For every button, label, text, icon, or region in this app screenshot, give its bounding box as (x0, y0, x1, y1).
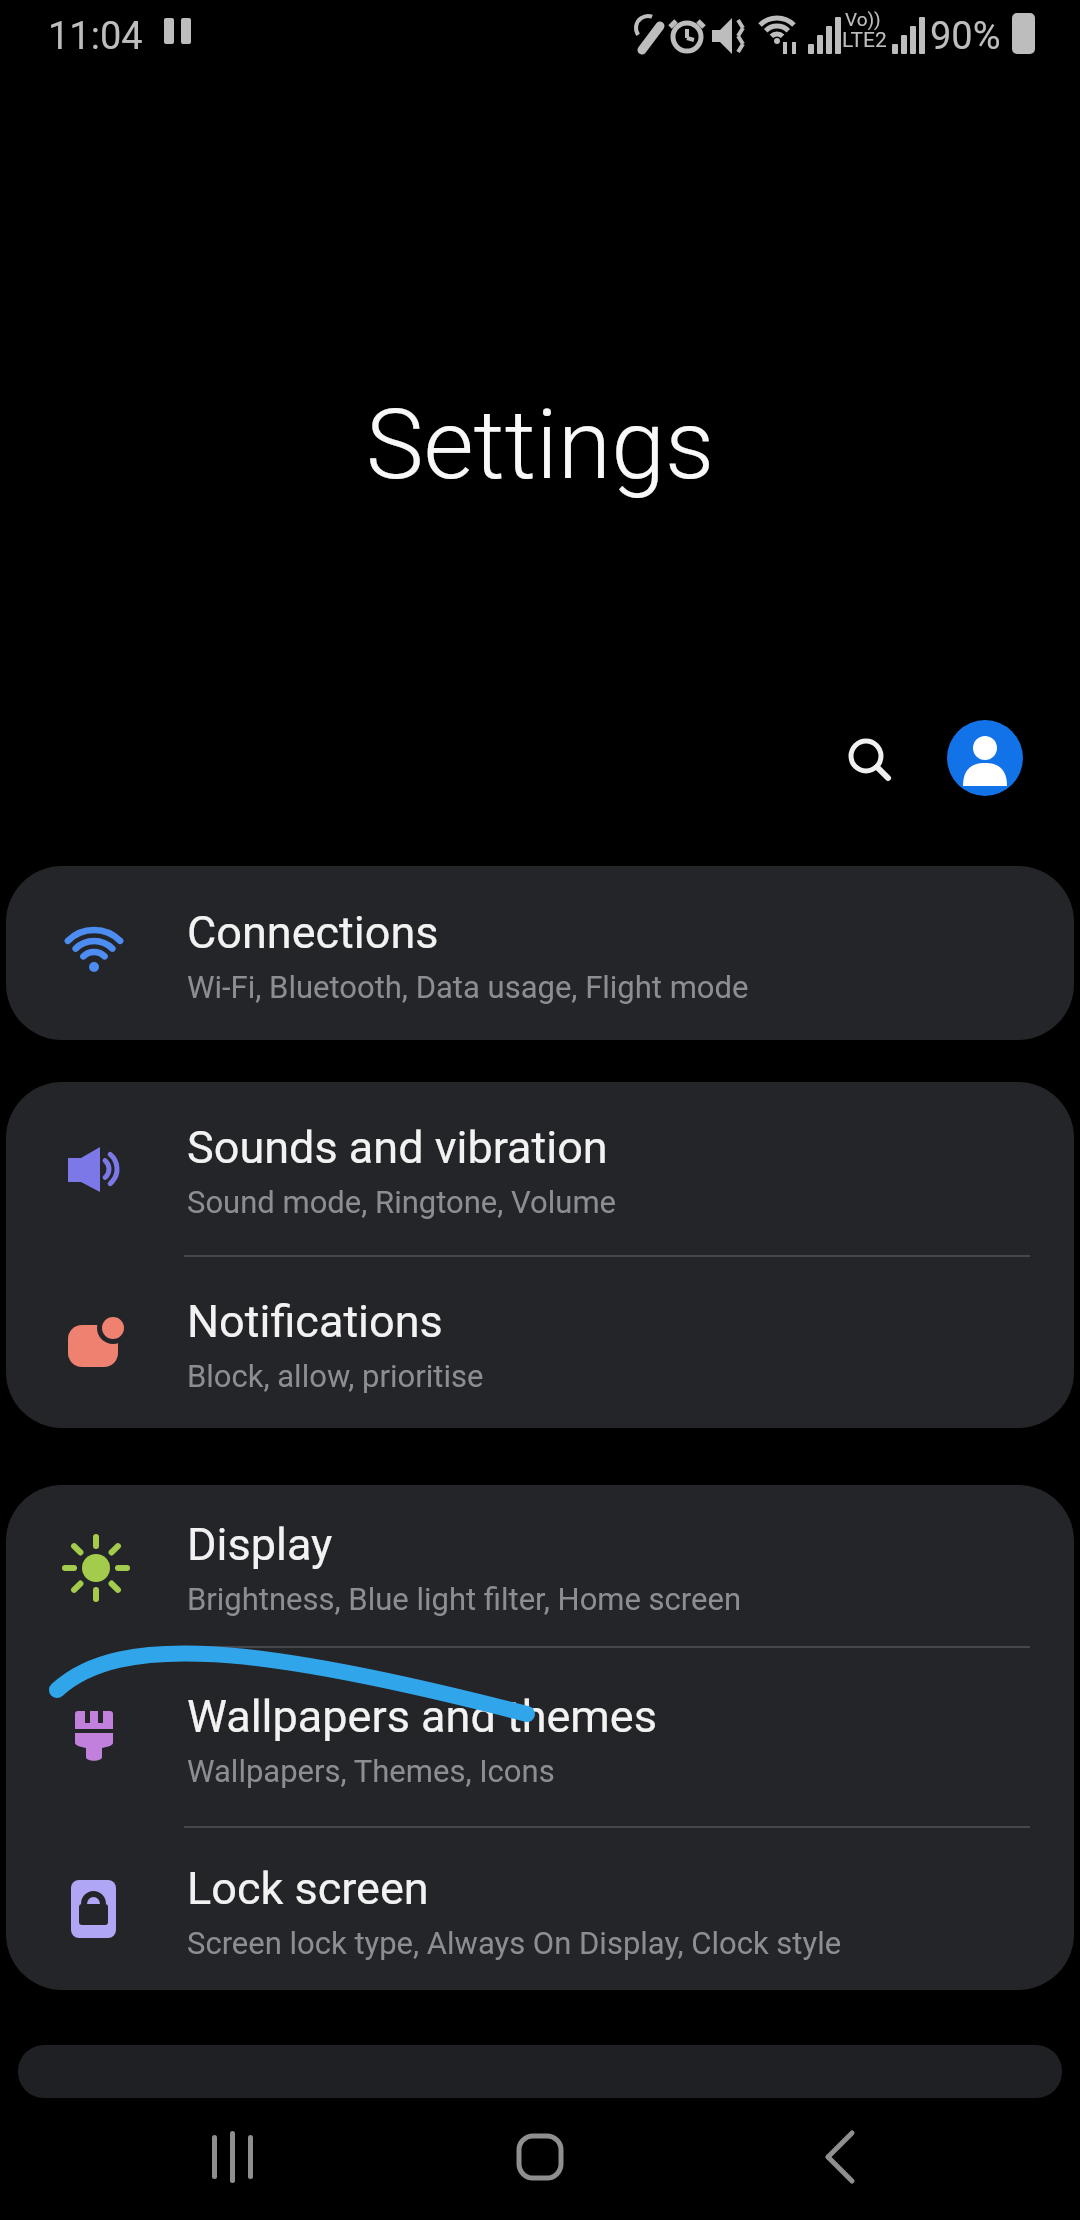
staticText: Wi-Fi, Bluetooth, Data usage, Flight mod… (187, 969, 749, 1005)
staticText: Wallpapers and themes (187, 1690, 657, 1743)
button[interactable] (195, 2125, 275, 2189)
button[interactable]: Sounds and vibration (6, 1082, 1074, 1255)
staticText: Lock screen (187, 1862, 429, 1915)
staticText: Sounds and vibration (187, 1121, 608, 1174)
button[interactable] (838, 728, 902, 792)
staticText: Wallpapers, Themes, Icons (187, 1753, 555, 1789)
staticText: 90% (930, 14, 1001, 59)
button[interactable]: Display (6, 1485, 1074, 1646)
staticText: 11:04 (48, 14, 143, 59)
staticText: Vo)) (845, 8, 881, 30)
staticText: Display (187, 1518, 333, 1571)
staticText: Notifications (187, 1295, 443, 1348)
button[interactable]: Connections (6, 866, 1074, 1040)
button[interactable]: Wallpapers and themes (6, 1648, 1074, 1826)
button[interactable]: Lock screen (6, 1828, 1074, 1990)
staticText: Screen lock type, Always On Display, Clo… (187, 1925, 842, 1961)
button[interactable] (500, 2125, 580, 2189)
staticText: Connections (187, 906, 439, 959)
staticText: Sound mode, Ringtone, Volume (187, 1184, 617, 1220)
staticText: Block, allow, prioritise (187, 1358, 484, 1394)
staticText: Settings (366, 388, 715, 502)
button[interactable] (947, 720, 1023, 796)
button[interactable] (800, 2125, 880, 2189)
staticText: Brightness, Blue light filter, Home scre… (187, 1581, 742, 1617)
staticText: LTE2 (842, 28, 887, 53)
button[interactable]: Notifications (6, 1257, 1074, 1428)
